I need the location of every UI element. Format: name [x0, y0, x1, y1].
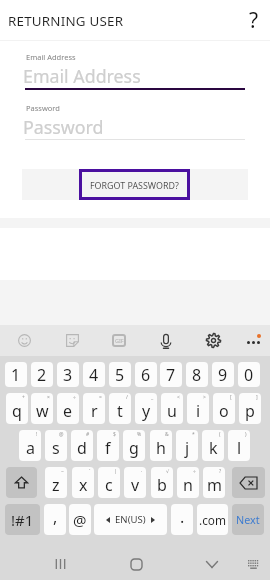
button[interactable]: 5 [109, 362, 131, 387]
button[interactable]: Help [238, 3, 270, 39]
staticText: + [22, 394, 25, 401]
button[interactable]: w [31, 393, 53, 424]
staticText: & [165, 431, 169, 438]
staticText: # [86, 431, 90, 438]
staticText: ! [36, 431, 38, 438]
staticText: z [52, 474, 60, 496]
button[interactable]: s [45, 430, 67, 461]
staticText: .com [199, 512, 226, 528]
staticText: x [79, 474, 88, 496]
button[interactable]: b [151, 467, 173, 498]
button[interactable]: Shift [6, 467, 37, 498]
staticText: r [91, 400, 98, 422]
button[interactable]: FORGOT PASSWORD? [79, 169, 190, 200]
staticText: 3 [63, 364, 73, 386]
button[interactable]: k [202, 430, 224, 461]
staticText: w [36, 400, 49, 422]
button[interactable]: r [83, 393, 105, 424]
button[interactable]: Settings [198, 325, 228, 356]
staticText: u [167, 400, 177, 422]
staticText: o [219, 400, 229, 422]
button[interactable]: m [203, 467, 225, 498]
staticText: s [52, 437, 60, 459]
button[interactable]: a [19, 430, 41, 461]
staticText: ) [245, 431, 247, 438]
button[interactable]: e [57, 393, 79, 424]
button[interactable]: c [98, 467, 120, 498]
button[interactable]: p [239, 393, 261, 424]
button[interactable]: g [123, 430, 145, 461]
staticText: g [129, 437, 139, 459]
button[interactable]: o [213, 393, 235, 424]
staticText: % [137, 431, 142, 438]
button[interactable]: x [72, 467, 94, 498]
staticText: ` [89, 468, 91, 475]
staticText: v [131, 474, 140, 496]
staticText: k [209, 437, 218, 459]
button[interactable]: Emoji [9, 325, 39, 356]
button[interactable]: f [97, 430, 119, 461]
button[interactable]: 1 [5, 362, 27, 387]
button[interactable]: y [135, 393, 157, 424]
button[interactable]: Change keyboard [237, 548, 269, 580]
button[interactable]: n [177, 467, 199, 498]
staticText: f [105, 437, 111, 459]
button[interactable]: 8 [186, 362, 208, 387]
staticText: FORGOT PASSWORD? [90, 179, 179, 191]
button[interactable]: i [187, 393, 209, 424]
staticText: Password [23, 115, 104, 139]
button[interactable]: d [71, 430, 93, 461]
button[interactable]: . [171, 504, 193, 535]
button[interactable]: 3 [57, 362, 79, 387]
staticText: Next [236, 512, 260, 527]
staticText: . [180, 506, 185, 528]
button[interactable]: Home [120, 548, 152, 580]
staticText: ? [249, 6, 259, 35]
staticText: , [53, 506, 58, 528]
button[interactable]: 2 [31, 362, 53, 387]
button[interactable]: u [161, 393, 183, 424]
button[interactable]: t [109, 393, 131, 424]
staticText: @ [73, 510, 87, 530]
staticText: < [177, 394, 180, 401]
button[interactable]: Backspace [232, 467, 265, 498]
button[interactable]: 7 [160, 362, 182, 387]
staticText: d [77, 437, 87, 459]
staticText: y [142, 400, 151, 422]
staticText: 2 [37, 364, 47, 386]
button[interactable]: More options [238, 325, 268, 356]
button[interactable]: @ [69, 504, 91, 535]
button[interactable]: Hide keyboard [196, 548, 228, 580]
button[interactable]: 4 [83, 362, 105, 387]
staticText: 4 [89, 364, 99, 386]
button[interactable]: l [228, 430, 250, 461]
staticText: 8 [192, 364, 202, 386]
button[interactable]: q [6, 393, 28, 424]
button[interactable]: 0 [238, 362, 260, 387]
button[interactable]: !#1 [5, 504, 40, 535]
button[interactable]: z [45, 467, 67, 498]
staticText: 7 [166, 364, 176, 386]
staticText: h [156, 437, 166, 459]
button[interactable]: Recent apps [44, 548, 76, 580]
button[interactable]: , [44, 504, 66, 535]
button[interactable]: GIF [104, 325, 134, 356]
button[interactable]: j [176, 430, 198, 461]
button[interactable]: .com [197, 504, 228, 535]
button[interactable]: Stickers [57, 325, 87, 356]
staticText: l [237, 437, 242, 459]
button[interactable]: 6 [135, 362, 157, 387]
staticText: c [105, 474, 113, 496]
staticText: _ [151, 394, 154, 401]
button[interactable]: EN(US) [94, 504, 167, 535]
button[interactable]: 9 [212, 362, 234, 387]
staticText: [ [230, 394, 232, 401]
button[interactable]: v [124, 467, 146, 498]
staticText: ÷ [193, 468, 196, 475]
button[interactable]: Voice input [151, 325, 181, 356]
staticText: GIF [115, 337, 124, 344]
button[interactable]: Next [232, 504, 264, 535]
button[interactable]: h [150, 430, 172, 461]
staticText: · [141, 468, 143, 475]
staticText: 1 [11, 364, 21, 386]
